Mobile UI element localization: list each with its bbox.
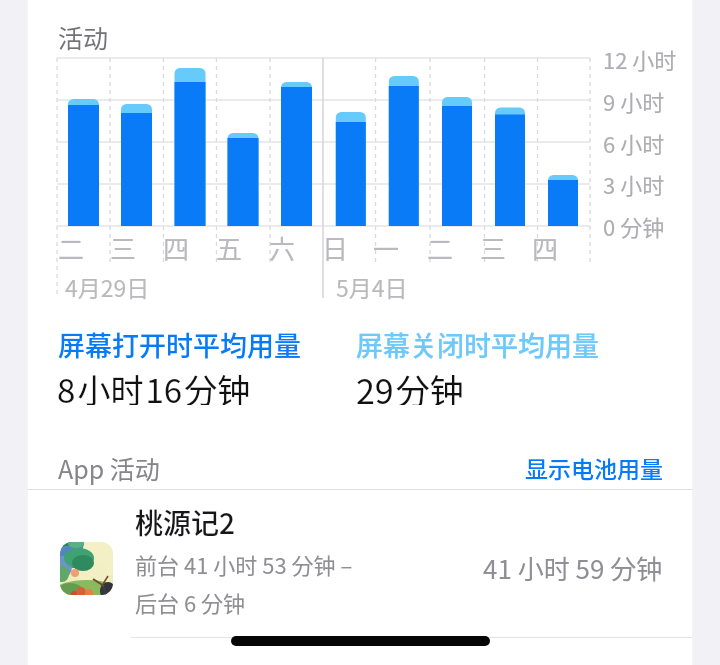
button[interactable]: 桃源记2 bbox=[28, 492, 692, 638]
staticText: 六 bbox=[269, 229, 296, 267]
staticText: 四 bbox=[163, 229, 190, 267]
staticText: 6 小时 bbox=[603, 127, 665, 159]
staticText: 12 小时 bbox=[603, 43, 677, 75]
staticText: 五 bbox=[216, 229, 243, 267]
staticText: 活动 bbox=[58, 19, 109, 55]
staticText: 屏幕打开时平均用量 bbox=[58, 325, 301, 364]
staticText: App 活动 bbox=[58, 450, 160, 486]
staticText: 前台 41 小时 53 分钟 – bbox=[135, 548, 353, 580]
staticText: 三 bbox=[480, 229, 507, 267]
staticText: 41 小时 59 分钟 bbox=[483, 549, 663, 587]
staticText: 二 bbox=[427, 229, 454, 267]
staticText: 一 bbox=[373, 229, 400, 267]
staticText: 3 小时 bbox=[603, 168, 665, 200]
staticText: 三 bbox=[110, 229, 137, 267]
button[interactable]: 显示电池用量 bbox=[520, 447, 663, 487]
staticText: 4月29日 bbox=[65, 270, 150, 303]
staticText: 二 bbox=[58, 229, 85, 267]
staticText: 5月4日 bbox=[336, 270, 408, 303]
staticText: 后台 6 分钟 bbox=[135, 586, 246, 618]
staticText: 8 小时 16 分钟 bbox=[57, 365, 251, 405]
staticText: 日 bbox=[322, 229, 349, 267]
staticText: 四 bbox=[532, 229, 559, 267]
staticText: 显示电池用量 bbox=[525, 451, 663, 484]
staticText: 0 分钟 bbox=[603, 210, 665, 242]
staticText: 桃源记2 bbox=[135, 502, 235, 542]
staticText: 29 分钟 bbox=[356, 365, 464, 405]
staticText: 屏幕关闭时平均用量 bbox=[356, 325, 599, 364]
staticText: 9 小时 bbox=[603, 85, 665, 117]
